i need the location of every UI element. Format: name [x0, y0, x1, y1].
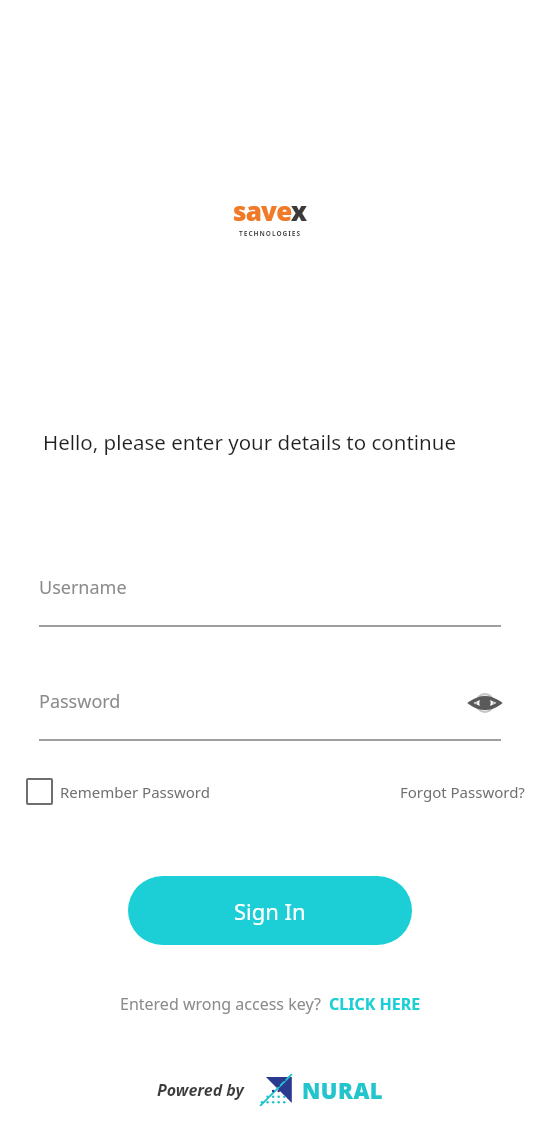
staticText: Hello, please enter your details to cont…: [43, 428, 456, 456]
button[interactable]: Show password: [463, 681, 507, 725]
button[interactable]: Forgot Password?: [400, 782, 525, 802]
staticText: NURAL: [302, 1075, 384, 1105]
staticText: Sign In: [234, 896, 306, 926]
button[interactable]: Remember Password: [26, 778, 210, 805]
button[interactable]: Username: [39, 575, 501, 627]
button[interactable]: Sign In: [128, 876, 412, 945]
staticText: Password: [39, 689, 121, 714]
button[interactable]: CLICK HERE: [329, 993, 421, 1015]
staticText: Entered wrong access key?: [120, 993, 321, 1015]
staticText: Remember Password: [60, 782, 210, 802]
staticText: Powered by: [157, 1079, 244, 1101]
staticText: savex: [233, 193, 307, 228]
button[interactable]: Password: [39, 689, 501, 741]
staticText: TECHNOLOGIES: [239, 229, 302, 238]
staticText: Username: [39, 575, 127, 600]
